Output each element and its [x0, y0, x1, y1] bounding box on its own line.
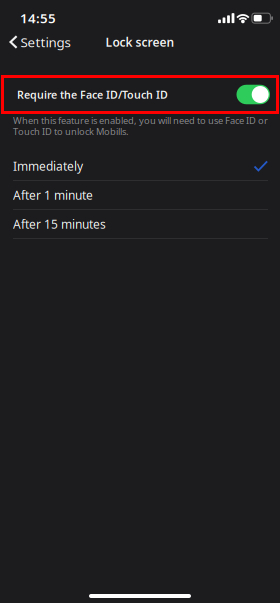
button[interactable]: Require the Face ID/Touch ID — [0, 75, 280, 114]
staticText: When this feature is enabled, you will n… — [13, 114, 268, 127]
staticText: After 1 minute — [13, 187, 93, 203]
staticText: Lock screen — [105, 34, 174, 50]
staticText: Immediately — [13, 158, 83, 174]
staticText: Touch ID to unlock Mobills. — [13, 125, 129, 138]
staticText: 14:55 — [20, 9, 56, 27]
button[interactable]: Settings — [0, 27, 76, 57]
staticText: Require the Face ID/Touch ID — [17, 87, 168, 102]
button[interactable]: Immediately — [0, 152, 280, 180]
staticText: Settings — [20, 33, 70, 51]
button[interactable]: After 15 minutes — [0, 210, 280, 238]
button[interactable]: After 1 minute — [0, 181, 280, 209]
staticText: After 15 minutes — [13, 216, 106, 232]
